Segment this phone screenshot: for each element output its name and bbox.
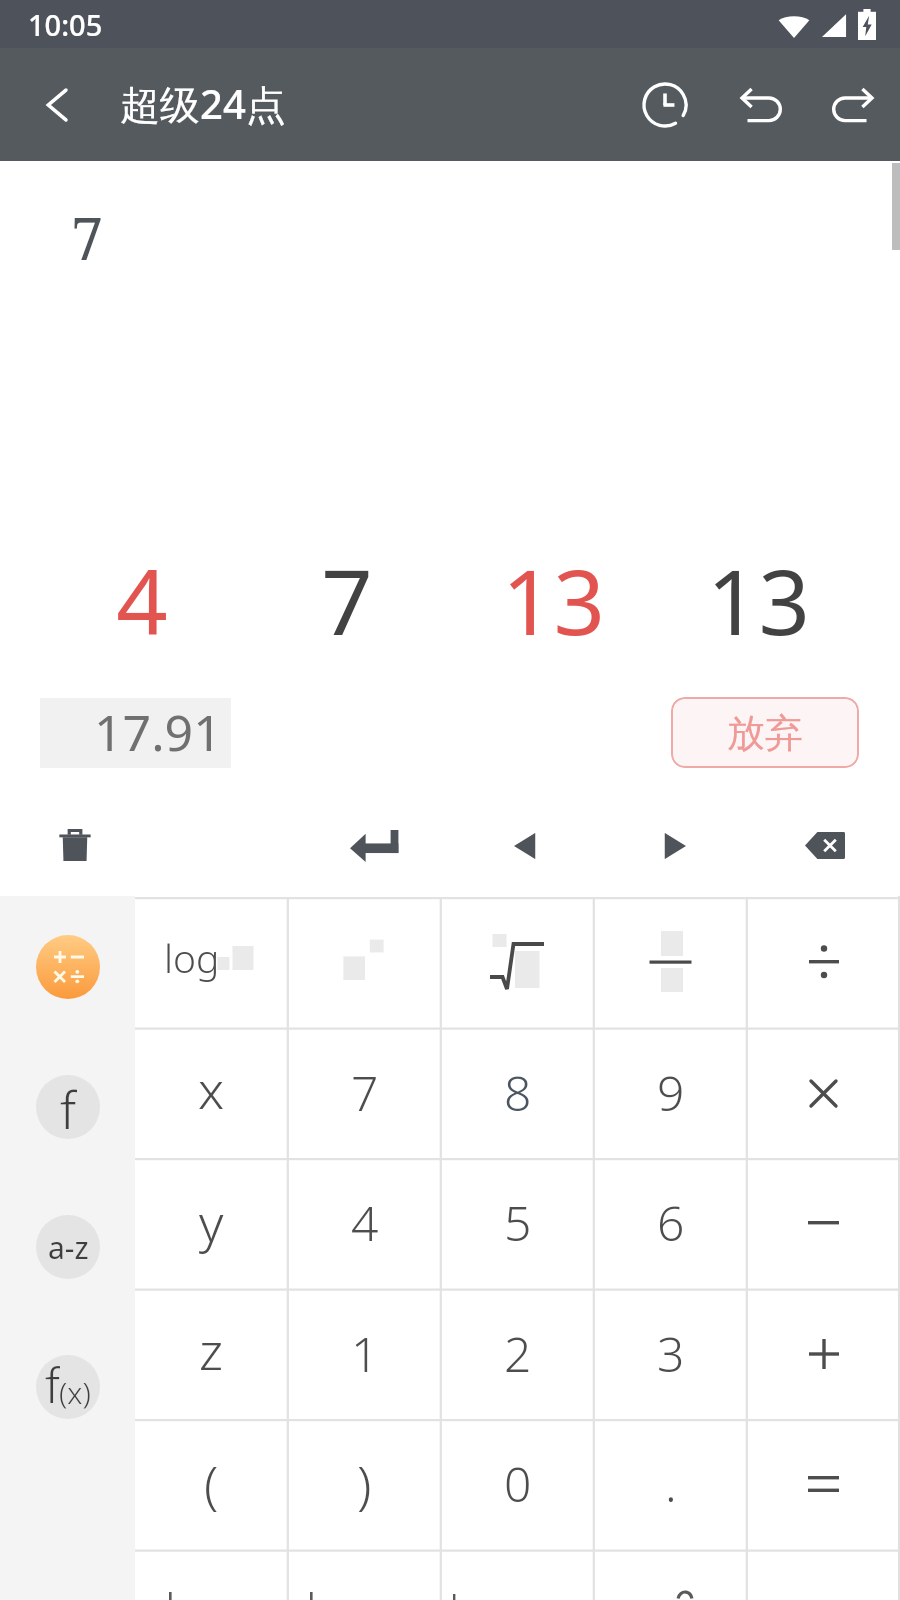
- button[interactable]: [594, 897, 747, 1027]
- button[interactable]: Clear: [35, 795, 115, 896]
- button[interactable]: 4: [72, 539, 212, 659]
- staticText: 6: [657, 1190, 685, 1255]
- button[interactable]: Move right: [635, 795, 715, 896]
- button[interactable]: Undo: [716, 60, 806, 150]
- button[interactable]: Backspace: [785, 795, 865, 896]
- button[interactable]: (: [135, 1419, 288, 1549]
- button[interactable]: [288, 897, 441, 1027]
- button[interactable]: z: [135, 1289, 288, 1419]
- staticText: ): [357, 1448, 372, 1519]
- button[interactable]: f: [36, 1355, 100, 1419]
- button[interactable]: [747, 897, 900, 1027]
- staticText: 超级24点: [120, 76, 286, 131]
- button[interactable]: 1: [288, 1289, 441, 1419]
- staticText: y: [199, 1186, 224, 1257]
- button[interactable]: History: [620, 60, 710, 150]
- staticText: 7: [71, 198, 104, 277]
- staticText: 7: [351, 1060, 379, 1125]
- button[interactable]: 13: [483, 539, 623, 659]
- staticText: 4: [116, 539, 168, 659]
- button[interactable]: Back: [20, 67, 96, 143]
- staticText: 13: [502, 539, 605, 659]
- button[interactable]: 放弃: [671, 697, 859, 768]
- button[interactable]: y: [135, 1158, 288, 1288]
- button[interactable]: Move left: [485, 795, 565, 896]
- button[interactable]: 17.91: [40, 698, 231, 768]
- button[interactable]: 13: [688, 539, 828, 659]
- button[interactable]: 6: [594, 1158, 747, 1288]
- staticText: .: [665, 1451, 677, 1516]
- button[interactable]: log: [135, 897, 288, 1027]
- button[interactable]: [747, 1289, 900, 1419]
- button[interactable]: [441, 897, 594, 1027]
- staticText: 0: [504, 1451, 532, 1516]
- button[interactable]: [747, 1028, 900, 1158]
- staticText: z: [199, 1314, 224, 1385]
- button[interactable]: 9: [594, 1028, 747, 1158]
- staticText: 10:05: [28, 5, 103, 44]
- button[interactable]: x: [135, 1028, 288, 1158]
- button[interactable]: 7: [288, 1028, 441, 1158]
- button[interactable]: 7: [277, 539, 417, 659]
- staticText: (: [204, 1448, 219, 1519]
- staticText: 8: [504, 1060, 532, 1125]
- staticText: 1: [351, 1321, 379, 1386]
- button[interactable]: 0: [441, 1419, 594, 1549]
- staticText: 放弃: [727, 709, 803, 757]
- staticText: 2: [504, 1321, 532, 1386]
- button[interactable]: Redo: [808, 60, 898, 150]
- staticText: 5: [504, 1190, 532, 1255]
- button[interactable]: f: [36, 1075, 100, 1139]
- staticText: 3: [657, 1321, 685, 1386]
- staticText: (x): [59, 1372, 91, 1413]
- staticText: 9: [657, 1060, 685, 1125]
- staticText: x: [198, 1053, 225, 1124]
- staticText: 17.91: [94, 698, 222, 766]
- staticText: 13: [707, 539, 810, 659]
- button[interactable]: Enter: [335, 795, 415, 896]
- staticText: 7: [321, 539, 373, 659]
- button[interactable]: ): [288, 1419, 441, 1549]
- button[interactable]: 8: [441, 1028, 594, 1158]
- button[interactable]: .: [594, 1419, 747, 1549]
- staticText: a-z: [48, 1227, 89, 1268]
- staticText: 4: [351, 1190, 379, 1255]
- button[interactable]: 4: [288, 1158, 441, 1288]
- staticText: f: [60, 1075, 77, 1137]
- button[interactable]: 5: [441, 1158, 594, 1288]
- button[interactable]: [747, 1419, 900, 1549]
- staticText: log: [164, 931, 220, 984]
- button[interactable]: 2: [441, 1289, 594, 1419]
- button[interactable]: [36, 935, 100, 999]
- staticText: f: [45, 1355, 60, 1416]
- button[interactable]: a-z: [36, 1215, 100, 1279]
- button[interactable]: 3: [594, 1289, 747, 1419]
- button[interactable]: [747, 1158, 900, 1288]
